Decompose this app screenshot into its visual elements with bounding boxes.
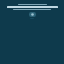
button[interactable]: Start bbox=[29, 12, 36, 17]
